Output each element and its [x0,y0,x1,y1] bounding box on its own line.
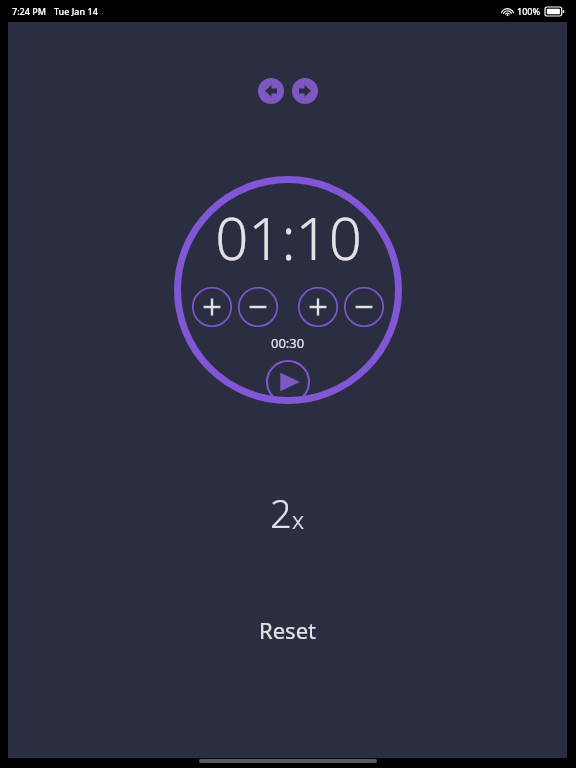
button[interactable]: Decrease [342,285,386,329]
button[interactable]: Forward [290,76,320,106]
button[interactable]: Start [257,360,319,404]
button[interactable]: Reset [243,607,332,653]
button[interactable]: Back [256,76,286,106]
staticText: 2 [270,487,292,539]
staticText: 00:30 [271,334,305,352]
staticText: 100% [517,5,541,17]
button[interactable]: Increase [296,285,340,329]
staticText: x [292,503,305,536]
staticText: Tue Jan 14 [54,5,98,17]
staticText: 01:10 [215,198,362,277]
staticText: Reset [259,615,316,645]
button[interactable]: Decrease [236,285,280,329]
staticText: 7:24 PM [12,5,46,17]
button[interactable]: 2 [258,481,317,545]
button[interactable]: Increase [190,285,234,329]
